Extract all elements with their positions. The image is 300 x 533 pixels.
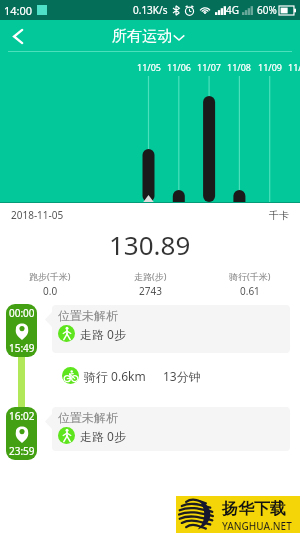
staticText: 11/08 xyxy=(227,61,251,73)
staticText: 2743 xyxy=(139,284,162,298)
button[interactable]: 所有运动 xyxy=(112,27,186,46)
staticText: 11/05 xyxy=(137,61,161,73)
staticText: 走路(步) xyxy=(134,270,167,282)
staticText: 扬华下载 xyxy=(222,499,286,519)
staticText: 15:49 xyxy=(9,341,35,355)
staticText: 0.61 xyxy=(240,284,260,298)
staticText: 0.13K/s xyxy=(133,3,168,17)
staticText: 4G xyxy=(226,3,239,17)
staticText: 60% xyxy=(257,3,277,17)
button[interactable]: 16:02 xyxy=(6,407,37,460)
staticText: 14:00 xyxy=(4,3,33,18)
button[interactable]: 位置未解析 xyxy=(45,407,290,451)
staticText: 千卡 xyxy=(269,209,289,222)
staticText: 130.89 xyxy=(109,227,191,262)
staticText: 骑行(千米) xyxy=(229,270,271,282)
button[interactable]: 位置未解析 xyxy=(45,305,290,353)
staticText: 11/06 xyxy=(167,61,191,73)
staticText: YANGHUA.NET xyxy=(222,519,292,533)
staticText: 11/07 xyxy=(197,61,221,73)
button[interactable] xyxy=(0,52,300,203)
staticText: 骑行 0.6km xyxy=(84,368,146,384)
staticText: 11/10 xyxy=(288,61,300,73)
staticText: 所有运动 xyxy=(112,27,172,46)
staticText: 0.0 xyxy=(43,284,58,298)
button[interactable]: 骑行 0.6km xyxy=(62,367,201,384)
staticText: 00:00 xyxy=(9,306,35,320)
staticText: 11/09 xyxy=(258,61,282,73)
staticText: 2018-11-05 xyxy=(11,208,64,222)
staticText: 13分钟 xyxy=(163,368,201,384)
staticText: 走路 0步 xyxy=(80,428,126,444)
staticText: 16:02 xyxy=(9,409,35,423)
staticText: 23:59 xyxy=(9,444,35,458)
button[interactable]: 00:00 xyxy=(6,304,37,357)
staticText: 走路 0步 xyxy=(80,326,126,342)
button[interactable]: Back xyxy=(0,20,36,52)
staticText: 位置未解析 xyxy=(58,410,118,425)
staticText: 位置未解析 xyxy=(58,308,118,323)
staticText: 跑步(千米) xyxy=(29,270,71,282)
